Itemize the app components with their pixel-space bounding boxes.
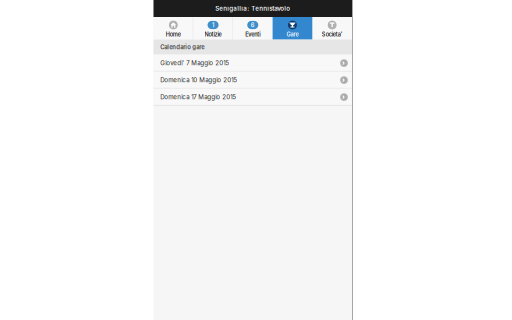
button[interactable]: 1 xyxy=(193,17,233,40)
staticText: 1 xyxy=(212,21,214,29)
staticText: Eventi xyxy=(245,31,260,38)
button[interactable]: Societa' xyxy=(312,17,352,40)
button[interactable]: Home xyxy=(153,17,193,40)
staticText: Domenica 10 Maggio 2015 xyxy=(160,76,237,84)
button[interactable]: 6 xyxy=(233,17,273,40)
staticText: Societa' xyxy=(322,31,343,38)
button[interactable]: Domenica 17 Maggio 2015 xyxy=(153,89,352,106)
staticText: Notizie xyxy=(204,31,221,38)
staticText: Home xyxy=(166,31,181,38)
staticText: Gare xyxy=(286,31,298,38)
button[interactable]: Gare xyxy=(273,17,312,40)
staticText: Domenica 17 Maggio 2015 xyxy=(160,93,236,101)
staticText: Giovedi' 7 Maggio 2015 xyxy=(160,59,229,67)
staticText: Calendario gare xyxy=(160,44,204,51)
staticText: Senigallia: Tennistavolo xyxy=(215,5,290,12)
staticText: 6 xyxy=(251,21,255,29)
button[interactable]: Domenica 10 Maggio 2015 xyxy=(153,72,352,89)
button[interactable]: Giovedi' 7 Maggio 2015 xyxy=(153,55,352,72)
